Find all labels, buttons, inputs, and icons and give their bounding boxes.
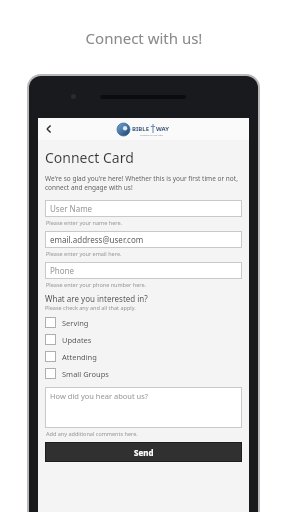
button[interactable]: Back [38, 118, 60, 140]
staticText: Updates [62, 335, 92, 345]
staticText: Connect Card [45, 148, 134, 167]
button[interactable]: User Name [45, 200, 242, 217]
button[interactable]: Attending [45, 348, 242, 365]
staticText: Please check any and all that apply. [45, 304, 136, 311]
staticText: Please enter your email here. [46, 250, 122, 257]
staticText: How did you hear about us? [50, 391, 149, 401]
staticText: Serving [62, 318, 89, 328]
staticText: email.address@user.com [50, 234, 144, 245]
staticText: Attending [62, 352, 97, 362]
staticText: Please enter your phone number here. [46, 281, 147, 288]
staticText: Please enter your name here. [46, 219, 123, 226]
button[interactable]: Send [45, 442, 242, 462]
button[interactable]: email.address@user.com [45, 231, 242, 248]
staticText: WAY [156, 125, 170, 133]
button[interactable]: Updates [45, 331, 242, 348]
staticText: Connect with us! [0, 28, 288, 48]
staticText: User Name [50, 203, 93, 214]
staticText: Add any additional comments here. [46, 430, 138, 437]
staticText: We're so glad you're here! Whether this … [45, 174, 242, 192]
button[interactable]: Serving [45, 314, 242, 331]
button[interactable]: Small Groups [45, 365, 242, 382]
staticText: What are you interested in? [45, 293, 148, 304]
button[interactable]: How did you hear about us? [45, 387, 242, 428]
staticText: Send [134, 447, 154, 458]
staticText: Small Groups [62, 369, 109, 379]
staticText: CHRISTIAN CENTER [140, 133, 163, 136]
staticText: Phone [50, 265, 75, 276]
staticText: BIBLE [132, 125, 150, 133]
button[interactable]: Phone [45, 262, 242, 279]
